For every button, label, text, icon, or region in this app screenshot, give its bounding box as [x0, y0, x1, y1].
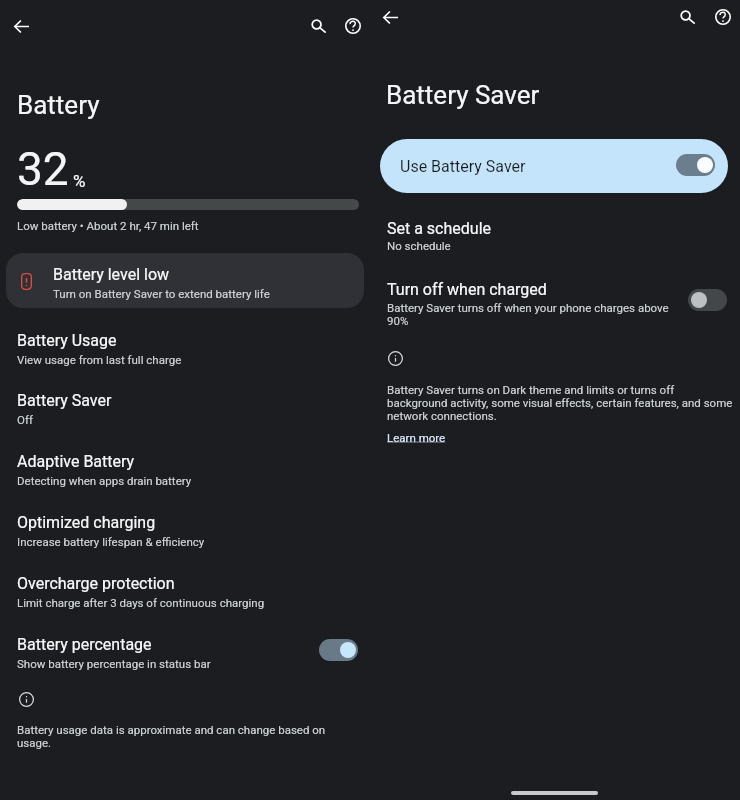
staticText: Off — [17, 413, 33, 426]
staticText: Battery Saver — [17, 391, 112, 410]
button[interactable]: Learn more — [387, 431, 446, 444]
button[interactable]: Off — [688, 289, 727, 311]
staticText: Use Battery Saver — [400, 157, 526, 176]
staticText: Adaptive Battery — [17, 452, 135, 471]
button[interactable]: Search — [299, 7, 337, 45]
staticText: Battery — [17, 90, 100, 120]
staticText: Show battery percentage in status bar — [17, 657, 211, 670]
staticText: 32 — [17, 142, 69, 196]
button[interactable]: Help — [704, 0, 740, 36]
button[interactable]: Adaptive Battery — [0, 446, 371, 501]
staticText: Battery Usage — [17, 331, 117, 350]
staticText: Battery level low — [53, 265, 170, 284]
button[interactable]: Battery percentage — [0, 629, 371, 684]
staticText: Overcharge protection — [17, 574, 175, 593]
staticText: Battery percentage — [17, 635, 152, 654]
staticText: Limit charge after 3 days of continuous … — [17, 596, 265, 609]
staticText: View usage from last full charge — [17, 353, 182, 366]
staticText: Battery usage data is approximate and ca… — [17, 723, 326, 749]
button[interactable]: Help — [334, 7, 372, 45]
staticText: Optimized charging — [17, 513, 156, 532]
button[interactable]: Back — [2, 7, 40, 45]
button[interactable]: Back — [371, 0, 409, 36]
button[interactable]: Optimized charging — [0, 507, 371, 562]
button[interactable]: Battery Saver — [0, 385, 371, 440]
staticText: % — [73, 171, 86, 191]
staticText: Turn on Battery Saver to extend battery … — [53, 287, 270, 300]
staticText: Battery Saver — [386, 80, 540, 110]
button[interactable]: Battery level low — [6, 253, 364, 308]
button[interactable]: Battery Usage — [0, 325, 371, 380]
staticText: Battery Saver turns off when your phone … — [387, 301, 672, 327]
staticText: Turn off when charged — [387, 280, 547, 299]
button[interactable]: Search — [668, 0, 706, 36]
staticText: Detecting when apps drain battery — [17, 474, 192, 487]
staticText: Set a schedule — [387, 219, 492, 238]
button[interactable]: On — [676, 154, 715, 176]
staticText: Battery Saver turns on Dark theme and li… — [387, 383, 735, 422]
button[interactable]: Set a schedule — [371, 212, 740, 262]
button[interactable]: Overcharge protection — [0, 568, 371, 623]
button[interactable]: On — [319, 639, 358, 661]
button[interactable]: Use Battery Saver — [380, 139, 728, 193]
staticText: Increase battery lifespan & efficiency — [17, 535, 205, 548]
staticText: Low battery • About 2 hr, 47 min left — [17, 219, 199, 232]
button[interactable]: Turn off when charged — [371, 272, 740, 330]
staticText: No schedule — [387, 239, 451, 252]
